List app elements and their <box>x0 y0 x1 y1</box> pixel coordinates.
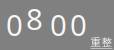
staticText: 0 <box>6 5 23 44</box>
staticText: 8 <box>26 0 43 38</box>
staticText: 0 <box>50 5 67 44</box>
staticText: 重整 <box>90 36 112 49</box>
staticText: 0 <box>70 5 87 44</box>
button[interactable]: 重整 <box>90 36 112 49</box>
